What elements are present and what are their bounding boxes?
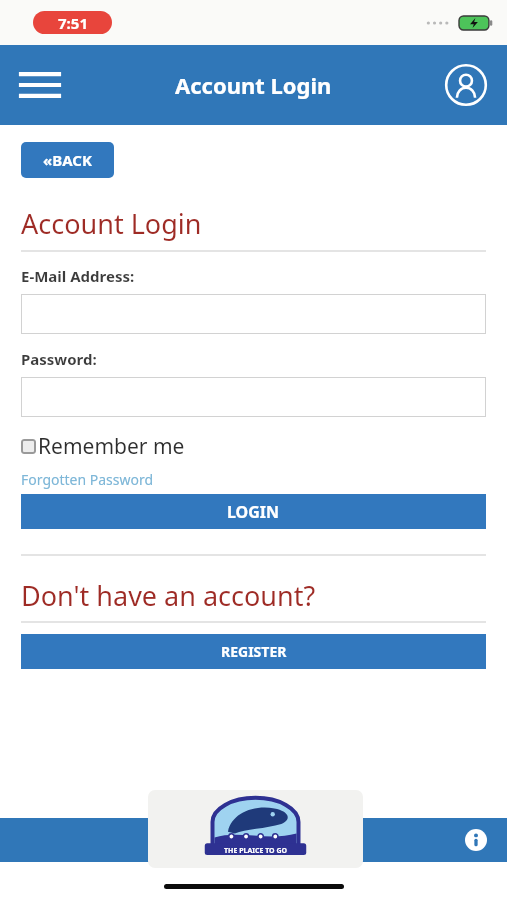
button[interactable]: LOGIN	[21, 494, 486, 529]
staticText: E-Mail Address:	[21, 266, 135, 286]
button[interactable]: «BACK	[21, 142, 114, 178]
staticText: LOGIN	[227, 501, 280, 523]
staticText: Password:	[21, 349, 97, 369]
button[interactable]: Account	[442, 61, 490, 109]
staticText: Remember me	[38, 432, 185, 461]
button[interactable]: Remember me	[21, 432, 185, 461]
staticText: THE PLAICE TO GO	[224, 846, 288, 856]
staticText: 7:51	[58, 13, 88, 33]
staticText: Account Login	[21, 205, 202, 242]
staticText: Account Login	[175, 70, 332, 100]
staticText: REGISTER	[221, 642, 287, 661]
staticText: «BACK	[43, 150, 92, 170]
staticText: Don't have an account?	[21, 577, 316, 614]
button[interactable]	[21, 377, 486, 417]
button[interactable]	[21, 294, 486, 334]
staticText: Forgotten Password	[21, 470, 154, 489]
button[interactable]: Open navigation menu	[14, 59, 66, 111]
button[interactable]: The Plaice To Go logo	[148, 790, 363, 868]
button[interactable]: Information	[459, 823, 493, 857]
button[interactable]: REGISTER	[21, 634, 486, 669]
button[interactable]: Forgotten Password	[21, 470, 154, 489]
